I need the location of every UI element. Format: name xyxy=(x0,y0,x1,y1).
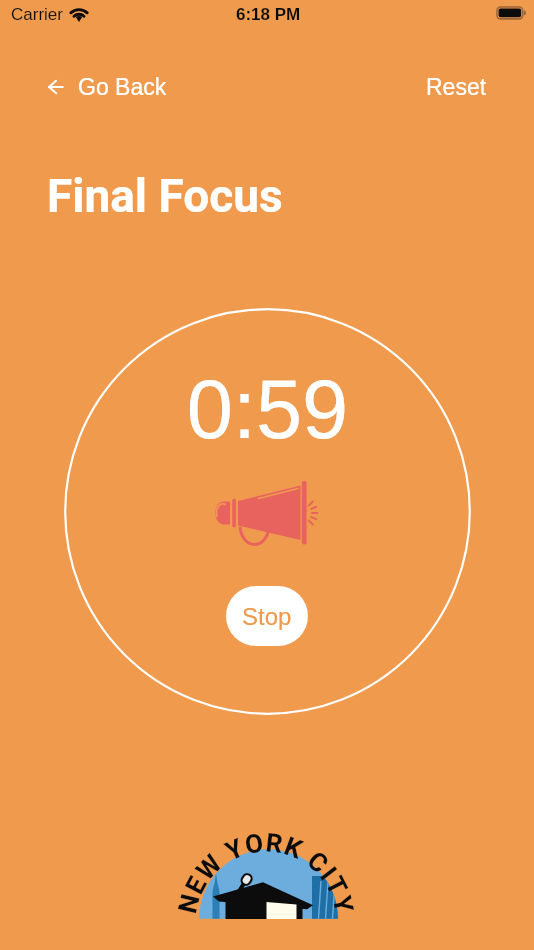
staticText: Final Focus xyxy=(47,169,283,223)
staticText: Reset xyxy=(426,74,487,100)
other: Wi-Fi xyxy=(69,8,89,22)
button[interactable]: Stop xyxy=(226,586,308,646)
button[interactable]: Go Back xyxy=(38,66,179,108)
staticText: 6:18 PM xyxy=(236,5,301,24)
staticText: Carrier xyxy=(11,5,63,24)
other: Focus session xyxy=(214,480,320,548)
staticText: 0:59 xyxy=(64,363,471,456)
staticText: Go Back xyxy=(78,74,167,100)
staticText: Stop xyxy=(242,603,292,630)
button[interactable]: Reset xyxy=(415,66,498,108)
